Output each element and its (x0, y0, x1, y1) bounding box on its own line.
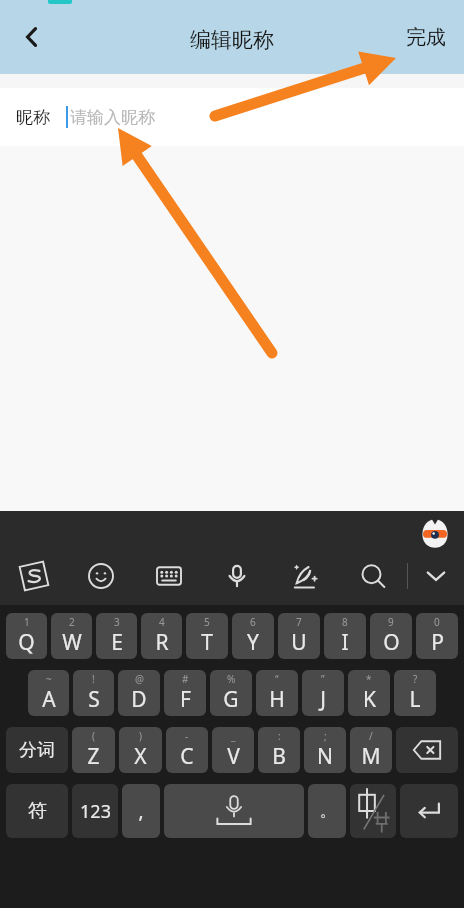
button[interactable]: / (350, 727, 392, 773)
staticText: N (317, 742, 333, 771)
staticText: K (363, 685, 376, 714)
button[interactable]: Backspace (396, 727, 458, 773)
button[interactable]: 8 (324, 613, 366, 659)
button[interactable]: Sogou (0, 547, 67, 605)
staticText: 7 (296, 615, 302, 629)
button[interactable]: Handwriting (271, 547, 339, 605)
button[interactable]: 7 (278, 613, 320, 659)
button[interactable]: - (166, 727, 208, 773)
staticText: L (409, 685, 421, 714)
button[interactable]: 1 (6, 613, 47, 659)
staticText: 0 (434, 615, 440, 629)
staticText: H (269, 685, 285, 714)
button[interactable]: 4 (141, 613, 182, 659)
button[interactable]: 符 (6, 784, 68, 838)
staticText: @ (135, 672, 144, 686)
staticText: V (227, 742, 240, 771)
button[interactable]: 0 (416, 613, 458, 659)
staticText: D (131, 685, 147, 714)
staticText: , (138, 798, 144, 824)
staticText: T (201, 628, 213, 657)
button[interactable]: , (122, 784, 160, 838)
staticText: 4 (159, 615, 165, 629)
staticText: ” (321, 672, 325, 686)
staticText: % (227, 672, 236, 686)
staticText: ; (324, 729, 327, 743)
button[interactable]: : (258, 727, 300, 773)
button[interactable]: ( (72, 727, 115, 773)
staticText: F (180, 685, 191, 714)
button[interactable]: # (164, 670, 206, 716)
staticText: # (182, 672, 189, 686)
staticText: _ (231, 729, 236, 743)
button[interactable]: Emoji (67, 547, 135, 605)
button[interactable]: Back (4, 9, 60, 65)
staticText: P (431, 628, 444, 657)
staticText: C (180, 742, 194, 771)
staticText: Z (87, 742, 100, 771)
staticText: ? (413, 672, 418, 686)
button[interactable]: Mascot (420, 518, 450, 548)
button[interactable]: 完成 (394, 15, 458, 60)
staticText: 完成 (406, 25, 446, 50)
button[interactable]: Search (339, 547, 407, 605)
staticText: I (341, 628, 349, 657)
button[interactable]: 123 (72, 784, 118, 838)
button[interactable]: Voice input (203, 547, 271, 605)
staticText: S (88, 685, 100, 714)
staticText: B (272, 742, 286, 771)
button[interactable]: ! (73, 670, 114, 716)
staticText: / (369, 729, 373, 743)
staticText: A (42, 685, 56, 714)
button[interactable]: “ (256, 670, 298, 716)
button[interactable]: Space (164, 784, 304, 838)
staticText: M (361, 742, 381, 771)
staticText: Q (18, 628, 35, 657)
staticText: 请输入昵称 (70, 107, 155, 128)
staticText: 1 (24, 615, 30, 629)
button[interactable]: 昵称 (16, 88, 464, 146)
button[interactable]: 。 (308, 784, 346, 838)
staticText: ( (92, 729, 95, 743)
staticText: - (185, 729, 189, 743)
button[interactable]: 5 (186, 613, 228, 659)
button[interactable]: ” (302, 670, 344, 716)
staticText: R (155, 628, 169, 657)
button[interactable]: % (210, 670, 252, 716)
button[interactable]: @ (118, 670, 160, 716)
staticText: 8 (342, 615, 348, 629)
staticText: J (320, 685, 326, 714)
staticText: : (278, 729, 281, 743)
staticText: E (111, 628, 123, 657)
staticText: W (62, 628, 82, 657)
button[interactable]: * (348, 670, 390, 716)
button[interactable]: Keyboard layout (135, 547, 203, 605)
staticText: X (134, 742, 147, 771)
button[interactable]: 3 (96, 613, 137, 659)
button[interactable]: Enter (400, 784, 458, 838)
staticText: * (366, 672, 372, 686)
button[interactable]: ~ (28, 670, 69, 716)
staticText: ! (92, 672, 95, 686)
staticText: 5 (204, 615, 210, 629)
button[interactable]: ) (119, 727, 162, 773)
button[interactable]: ? (394, 670, 436, 716)
button[interactable]: 9 (370, 613, 412, 659)
button[interactable]: 6 (232, 613, 274, 659)
staticText: 编辑昵称 (190, 27, 274, 53)
staticText: 分词 (19, 739, 55, 762)
button[interactable]: 2 (51, 613, 92, 659)
staticText: U (291, 628, 307, 657)
button[interactable] (350, 784, 396, 838)
staticText: G (223, 685, 239, 714)
staticText: 符 (28, 799, 47, 823)
staticText: ~ (46, 672, 52, 686)
button[interactable]: _ (212, 727, 254, 773)
staticText: 9 (388, 615, 394, 629)
button[interactable]: ; (304, 727, 346, 773)
button[interactable]: 分词 (6, 727, 68, 773)
button[interactable]: Hide keyboard (408, 547, 464, 605)
staticText: 123 (80, 799, 111, 824)
staticText: 3 (114, 615, 120, 629)
staticText: 2 (69, 615, 75, 629)
